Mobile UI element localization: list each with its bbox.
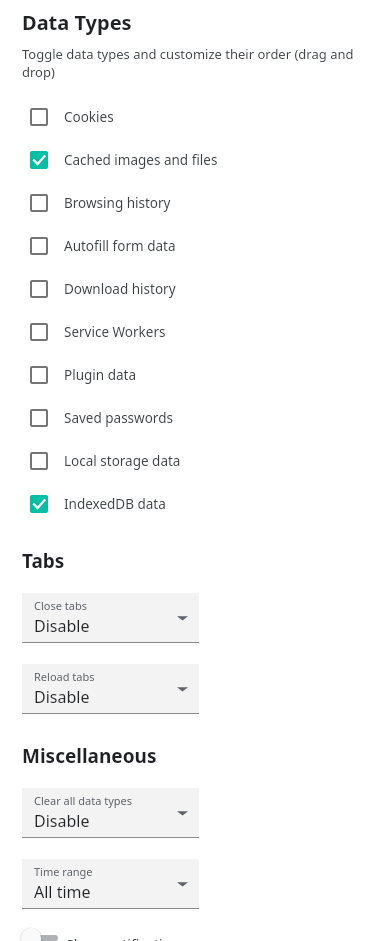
button[interactable]: Clear all data types xyxy=(22,788,199,838)
staticText: Autofill form data xyxy=(64,237,176,255)
button[interactable]: Cookies xyxy=(0,95,388,138)
staticText: Clear all data types xyxy=(34,793,133,808)
staticText: Time range xyxy=(34,864,93,879)
staticText: Tabs xyxy=(22,548,65,574)
button[interactable]: Show notification on success xyxy=(0,935,388,941)
button[interactable]: Autofill form data xyxy=(0,224,388,267)
staticText: Disable xyxy=(34,810,90,832)
staticText: Close tabs xyxy=(34,598,87,613)
staticText: Show notification on success xyxy=(66,935,255,941)
staticText: IndexedDB data xyxy=(64,495,166,513)
staticText: Data Types xyxy=(22,9,132,36)
button[interactable]: Local storage data xyxy=(0,439,388,482)
button[interactable]: Saved passwords xyxy=(0,396,388,439)
staticText: Service Workers xyxy=(64,323,166,341)
staticText: Saved passwords xyxy=(64,409,173,427)
button[interactable]: Download history xyxy=(0,267,388,310)
staticText: Download history xyxy=(64,280,176,298)
staticText: Local storage data xyxy=(64,452,181,470)
button[interactable]: Browsing history xyxy=(0,181,388,224)
staticText: Cookies xyxy=(64,108,114,126)
staticText: Toggle data types and customize their or… xyxy=(22,45,388,81)
staticText: All time xyxy=(34,881,91,903)
button[interactable]: Service Workers xyxy=(0,310,388,353)
staticText: Miscellaneous xyxy=(22,743,157,769)
staticText: Disable xyxy=(34,686,90,708)
staticText: Browsing history xyxy=(64,194,171,212)
button[interactable]: Cached images and files xyxy=(0,138,388,181)
staticText: Disable xyxy=(34,615,90,637)
staticText: Reload tabs xyxy=(34,669,95,684)
staticText: Plugin data xyxy=(64,366,136,384)
button[interactable]: IndexedDB data xyxy=(0,482,388,525)
button[interactable]: Reload tabs xyxy=(22,664,199,714)
button[interactable]: Close tabs xyxy=(22,593,199,643)
staticText: Cached images and files xyxy=(64,151,218,169)
button[interactable]: Time range xyxy=(22,859,199,909)
button[interactable]: Plugin data xyxy=(0,353,388,396)
